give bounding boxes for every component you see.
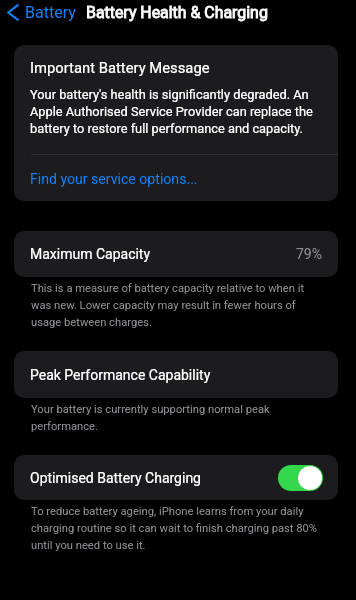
staticText: Peak Performance Capability [30,367,211,383]
staticText: Your battery is currently supporting nor… [31,399,322,433]
button[interactable]: Peak Performance Capability [14,351,338,398]
button[interactable]: Optimised Battery Charging [278,465,323,491]
staticText: 79% [296,246,322,262]
button[interactable]: Battery [0,1,84,24]
staticText: Optimised Battery Charging [30,470,201,486]
staticText: Maximum Capacity [30,246,151,262]
staticText: This is a measure of battery capacity re… [31,278,322,329]
staticText: Important Battery Message [30,59,210,76]
staticText: Battery Health & Charging [86,3,268,22]
staticText: Battery [25,3,76,22]
button[interactable]: Find your service options... [14,155,338,201]
staticText: Your battery's health is significantly d… [30,86,322,137]
staticText: To reduce battery ageing, iPhone learns … [31,501,322,552]
button[interactable]: Maximum Capacity [14,231,338,277]
staticText: Find your service options... [30,171,198,188]
